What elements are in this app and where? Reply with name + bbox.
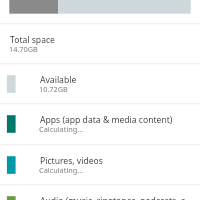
staticText: Pictures, videos: [40, 155, 103, 167]
staticText: Total space: [10, 34, 55, 46]
staticText: Audio (music, ringtones, podcasts, etc.): [40, 195, 185, 200]
button[interactable]: Available: [0, 63, 200, 103]
button[interactable]: Total space: [0, 23, 200, 63]
staticText: Apps (app data & media content): [40, 114, 173, 126]
staticText: 10.72GB: [39, 84, 68, 94]
staticText: 14.70GB: [9, 44, 38, 54]
staticText: Available: [40, 74, 77, 86]
staticText: Calculating...: [39, 165, 84, 175]
staticText: Calculating...: [39, 124, 84, 134]
button[interactable]: Pictures, videos: [0, 144, 200, 184]
button[interactable]: Apps (app data & media content): [0, 103, 200, 144]
button[interactable]: Audio (music, ringtones, podcasts, etc.): [0, 184, 200, 200]
